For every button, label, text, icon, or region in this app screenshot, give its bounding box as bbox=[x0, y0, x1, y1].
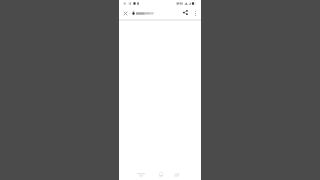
button[interactable]: Home bbox=[156, 171, 165, 177]
button[interactable]: Close bbox=[121, 9, 129, 17]
button[interactable]: Share bbox=[181, 8, 189, 16]
button[interactable]: Back bbox=[171, 171, 180, 177]
button[interactable]: Recents bbox=[136, 171, 145, 177]
button[interactable]: More options bbox=[191, 9, 199, 17]
